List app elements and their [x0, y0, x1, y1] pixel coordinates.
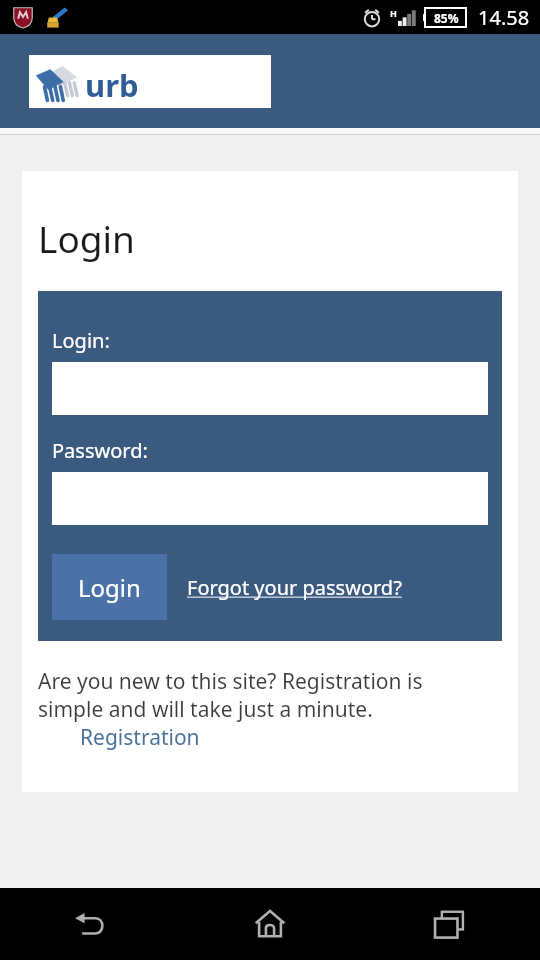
staticText: 14.58	[478, 4, 530, 31]
staticText: Forgot your password?	[187, 574, 402, 601]
staticText: Login	[78, 571, 141, 604]
staticText: H	[390, 7, 397, 19]
button[interactable]: Forgot your password?	[187, 566, 402, 609]
staticText: Password:	[52, 437, 148, 464]
staticText: urb	[85, 64, 139, 106]
button[interactable]: Back	[0, 888, 180, 960]
button[interactable]: Home	[180, 888, 360, 960]
staticText: Login	[38, 213, 135, 263]
button[interactable]: urb logo	[29, 55, 271, 108]
button[interactable]: Registration	[80, 723, 200, 752]
button[interactable]: Login	[52, 554, 167, 620]
staticText: Login:	[52, 327, 110, 354]
staticText: Registration	[80, 723, 200, 752]
staticText: 85%	[434, 10, 459, 26]
button[interactable]: Recent apps	[360, 888, 540, 960]
staticText: Are you new to this site? Registration i…	[38, 667, 423, 723]
